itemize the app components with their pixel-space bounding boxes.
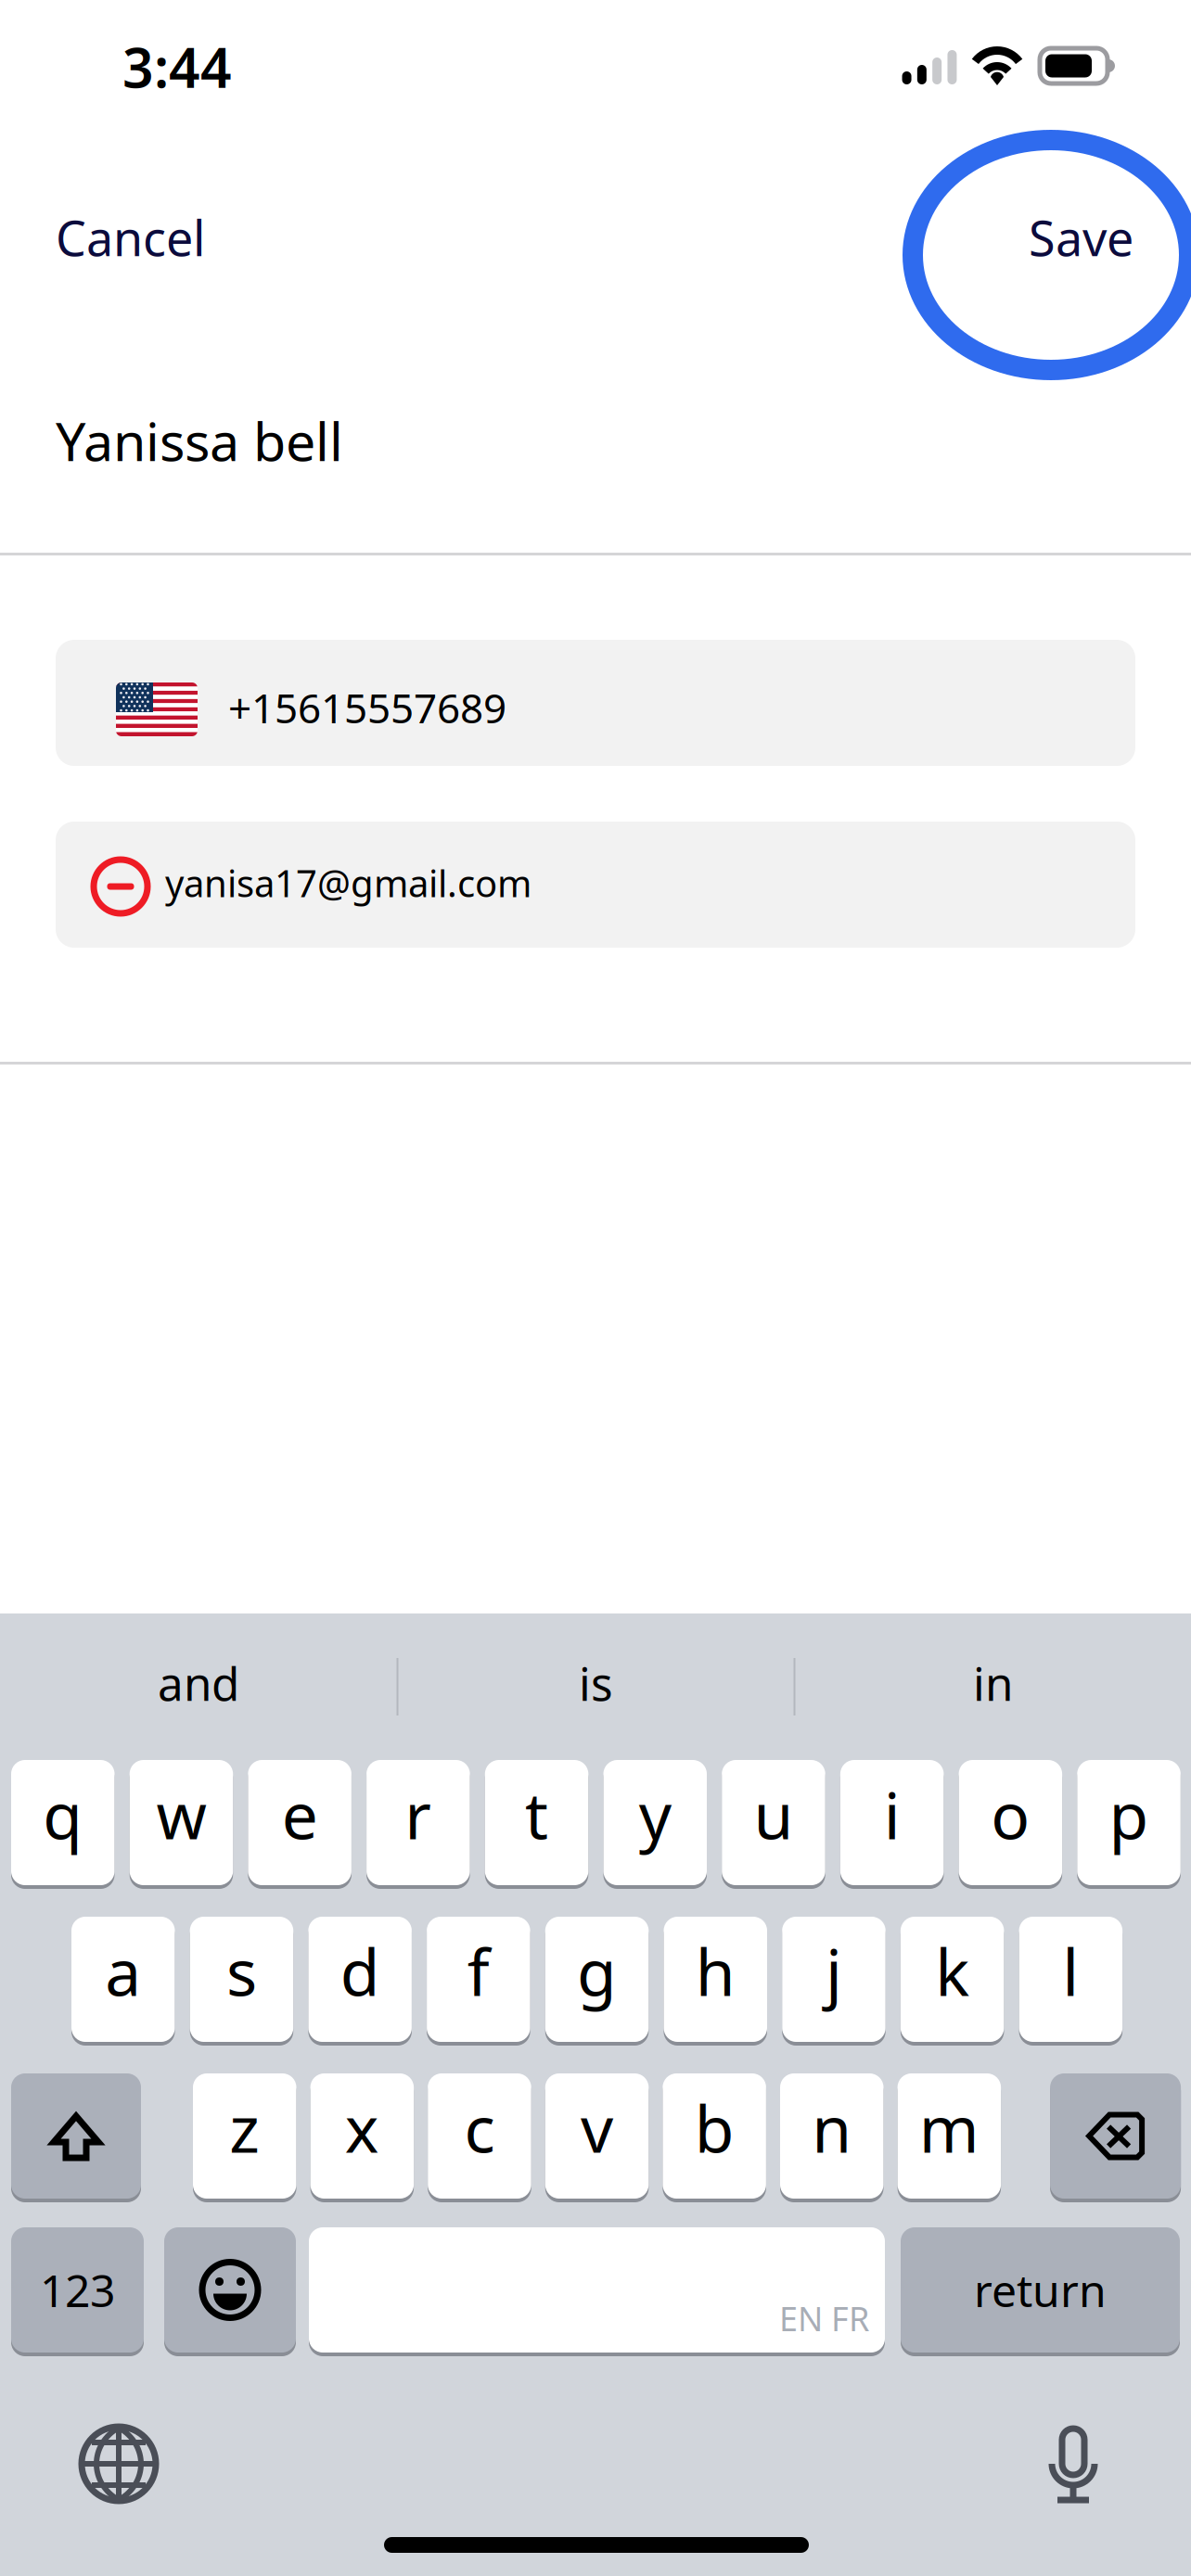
staticText: y: [639, 1772, 671, 1857]
button[interactable]: w: [130, 1758, 233, 1887]
button[interactable]: Delete: [1050, 2072, 1181, 2200]
button[interactable]: Shift: [11, 2072, 141, 2200]
staticText: n: [812, 2085, 852, 2170]
staticText: 3:44: [122, 31, 232, 103]
staticText: is: [579, 1653, 613, 1713]
staticText: b: [694, 2085, 734, 2170]
staticText: EN FR: [779, 2296, 869, 2340]
staticText: Yanissa bell: [56, 405, 343, 476]
staticText: e: [282, 1772, 318, 1857]
staticText: p: [1109, 1772, 1149, 1857]
button[interactable]: Switch keyboard: [82, 2427, 156, 2501]
staticText: s: [226, 1928, 257, 2014]
staticText: +15615557689: [228, 680, 506, 735]
button[interactable]: and: [0, 1613, 397, 1760]
button[interactable]: p: [1077, 1758, 1181, 1887]
button[interactable]: c: [428, 2072, 531, 2200]
staticText: z: [229, 2085, 260, 2170]
staticText: a: [105, 1928, 141, 2014]
staticText: k: [935, 1928, 969, 2014]
button[interactable]: t: [485, 1758, 588, 1887]
button[interactable]: s: [190, 1915, 293, 2044]
staticText: w: [156, 1772, 206, 1857]
button[interactable]: y: [603, 1758, 707, 1887]
staticText: in: [973, 1653, 1013, 1713]
button[interactable]: g: [545, 1915, 649, 2044]
button[interactable]: +15615557689: [56, 640, 1135, 766]
button[interactable]: m: [898, 2072, 1001, 2200]
button[interactable]: yanisa17@gmail.com: [56, 822, 1135, 948]
staticText: g: [577, 1928, 617, 2014]
staticText: h: [695, 1928, 735, 2014]
button[interactable]: Cancel: [56, 186, 260, 288]
staticText: v: [581, 2085, 613, 2170]
button[interactable]: Dictation: [1047, 2422, 1099, 2504]
staticText: and: [158, 1653, 239, 1713]
staticText: q: [43, 1772, 83, 1857]
button[interactable]: 123: [11, 2225, 144, 2354]
button[interactable]: is: [398, 1613, 794, 1760]
staticText: j: [826, 1928, 842, 2014]
button[interactable]: l: [1019, 1915, 1122, 2044]
staticText: Save: [1029, 205, 1133, 269]
staticText: t: [525, 1772, 548, 1857]
button[interactable]: h: [664, 1915, 767, 2044]
button[interactable]: f: [427, 1915, 530, 2044]
staticText: u: [754, 1772, 794, 1857]
staticText: c: [464, 2085, 495, 2170]
button[interactable]: q: [11, 1758, 115, 1887]
button[interactable]: i: [840, 1758, 944, 1887]
button[interactable]: Save: [967, 186, 1133, 288]
button[interactable]: Emoji: [164, 2225, 296, 2354]
button[interactable]: r: [366, 1758, 470, 1887]
button[interactable]: j: [782, 1915, 886, 2044]
staticText: l: [1062, 1928, 1079, 2014]
button[interactable]: v: [545, 2072, 649, 2200]
button[interactable]: in: [795, 1613, 1191, 1760]
staticText: o: [991, 1772, 1030, 1857]
button[interactable]: x: [310, 2072, 414, 2200]
button[interactable]: Space: [309, 2225, 885, 2354]
button[interactable]: k: [901, 1915, 1004, 2044]
button[interactable]: o: [959, 1758, 1062, 1887]
staticText: x: [345, 2085, 379, 2170]
staticText: i: [884, 1772, 900, 1857]
staticText: r: [405, 1772, 432, 1857]
button[interactable]: e: [248, 1758, 351, 1887]
staticText: f: [467, 1928, 490, 2014]
button[interactable]: d: [308, 1915, 412, 2044]
button[interactable]: n: [780, 2072, 884, 2200]
button[interactable]: b: [663, 2072, 766, 2200]
staticText: d: [340, 1928, 380, 2014]
staticText: yanisa17@gmail.com: [165, 858, 531, 907]
staticText: m: [919, 2085, 979, 2170]
button[interactable]: return: [901, 2225, 1180, 2354]
button[interactable]: z: [193, 2072, 296, 2200]
staticText: Cancel: [56, 205, 205, 269]
button[interactable]: u: [722, 1758, 825, 1887]
button[interactable]: a: [71, 1915, 175, 2044]
staticText: return: [974, 2260, 1107, 2319]
staticText: 123: [40, 2260, 115, 2319]
